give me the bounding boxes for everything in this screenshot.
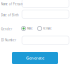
staticText: Generate xyxy=(26,55,44,61)
staticText: Male xyxy=(27,27,33,30)
staticText: ID Number xyxy=(1,38,16,42)
staticText: Name of Person xyxy=(1,2,23,6)
staticText: Date of Birth xyxy=(1,13,19,17)
button[interactable]: Male xyxy=(21,26,33,31)
button[interactable]: Female xyxy=(37,26,52,31)
button[interactable]: Generate xyxy=(12,52,58,64)
staticText: Female xyxy=(43,27,52,30)
staticText: Gender xyxy=(1,27,12,31)
